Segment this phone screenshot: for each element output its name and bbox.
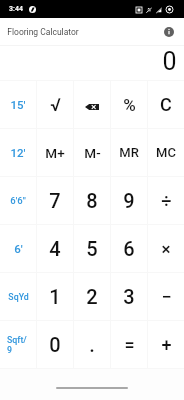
button[interactable]: = (111, 321, 147, 368)
button[interactable]: MC (148, 129, 184, 176)
staticText: 7 (49, 189, 61, 212)
staticText: M- (84, 145, 101, 161)
staticText: × (161, 239, 171, 259)
staticText: Sqft/ 9 (7, 335, 30, 355)
staticText: 4 (49, 237, 61, 260)
staticText: 3:44 (9, 5, 23, 13)
staticText: % (123, 95, 136, 115)
button[interactable]: Info (159, 22, 179, 42)
staticText: Flooring Calculator (7, 27, 79, 37)
staticText: 6' (14, 242, 23, 255)
button[interactable]: 5 (74, 225, 110, 272)
staticText: MR (119, 145, 139, 160)
staticText: √ (50, 94, 61, 115)
button[interactable]: 1 (37, 273, 73, 320)
staticText: 2 (86, 285, 98, 308)
staticText: 12' (10, 146, 26, 159)
button[interactable]: C (148, 81, 184, 128)
staticText: M+ (45, 145, 65, 161)
button[interactable]: SqYd (0, 273, 36, 320)
button[interactable]: Sqft/ 9 (0, 321, 36, 368)
button[interactable]: M- (74, 129, 110, 176)
staticText: 8 (86, 189, 98, 212)
button[interactable]: MR (111, 129, 147, 176)
button[interactable]: 8 (74, 177, 110, 224)
staticText: MC (156, 145, 176, 160)
button[interactable]: 0 (37, 321, 73, 368)
other: Backspace (85, 104, 99, 110)
staticText: 9 (123, 189, 135, 212)
button[interactable]: √ (37, 81, 73, 128)
staticText: 0 (49, 333, 61, 356)
button[interactable]: 6 (111, 225, 147, 272)
button[interactable]: ÷ (148, 177, 184, 224)
staticText: 5 (86, 237, 98, 260)
staticText: 6 (123, 237, 135, 260)
button[interactable]: 6'6" (0, 177, 36, 224)
button[interactable]: 15' (0, 81, 36, 128)
staticText: 1 (49, 285, 61, 308)
button[interactable]: % (111, 81, 147, 128)
button[interactable]: 12' (0, 129, 36, 176)
button[interactable]: 2 (74, 273, 110, 320)
staticText: ÷ (161, 190, 172, 211)
staticText: . (89, 333, 95, 356)
button[interactable]: M+ (37, 129, 73, 176)
staticText: 15' (10, 98, 26, 111)
button[interactable]: + (148, 321, 184, 368)
button[interactable]: 9 (111, 177, 147, 224)
button[interactable]: − (148, 273, 184, 320)
staticText: 0 (162, 47, 177, 76)
button[interactable]: Backspace (74, 81, 110, 128)
staticText: 3 (123, 285, 135, 308)
button[interactable]: 7 (37, 177, 73, 224)
button[interactable]: 3 (111, 273, 147, 320)
button[interactable]: 6' (0, 225, 36, 272)
button[interactable]: 4 (37, 225, 73, 272)
staticText: C (160, 94, 172, 115)
staticText: = (124, 334, 135, 355)
staticText: 6'6" (10, 195, 26, 206)
button[interactable]: × (148, 225, 184, 272)
button[interactable]: . (74, 321, 110, 368)
staticText: + (161, 334, 172, 355)
staticText: SqYd (8, 292, 29, 302)
staticText: − (161, 286, 172, 307)
